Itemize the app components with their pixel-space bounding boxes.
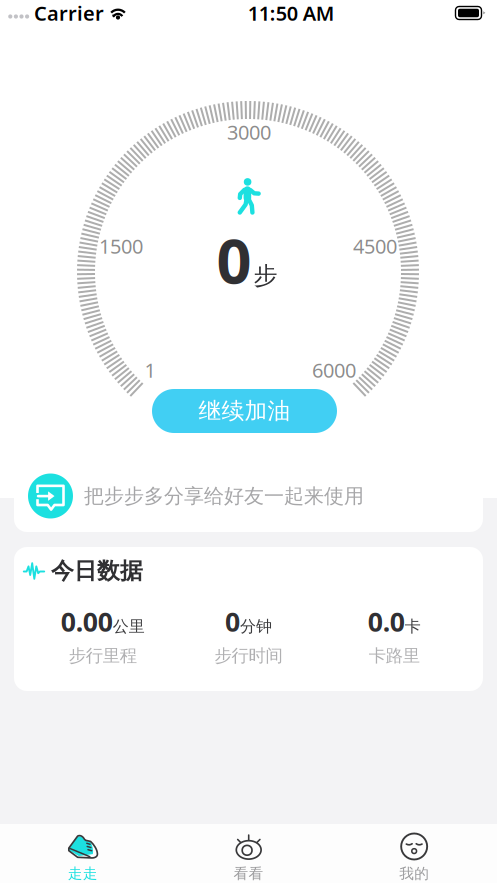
- staticText: 走走: [68, 864, 98, 882]
- staticText: 卡路里: [369, 645, 420, 666]
- staticText: 0: [225, 604, 240, 639]
- staticText: 3000: [227, 119, 271, 145]
- button[interactable]: 继续加油: [152, 389, 337, 433]
- staticText: 继续加油: [198, 397, 290, 425]
- button[interactable]: 看看: [166, 820, 331, 883]
- staticText: 步: [253, 261, 277, 291]
- button[interactable]: 走走: [0, 820, 166, 883]
- staticText: 看看: [233, 864, 263, 882]
- button[interactable]: 我的: [331, 820, 497, 883]
- staticText: Carrier: [34, 0, 104, 26]
- staticText: 6000: [312, 357, 356, 383]
- staticText: 分钟: [240, 616, 272, 636]
- staticText: 0.0: [368, 604, 405, 639]
- staticText: 今日数据: [51, 557, 143, 585]
- staticText: 11:50 AM: [248, 0, 335, 26]
- staticText: 0.00: [61, 604, 113, 639]
- staticText: 1500: [99, 233, 143, 259]
- staticText: 公里: [113, 616, 145, 636]
- staticText: 步行时间: [214, 645, 282, 666]
- staticText: 卡: [405, 616, 421, 636]
- staticText: 步行里程: [69, 645, 137, 666]
- staticText: 0: [216, 219, 251, 301]
- staticText: 1: [144, 357, 155, 383]
- button[interactable]: 把步步多分享给好友一起来使用: [14, 460, 483, 532]
- staticText: 把步步多分享给好友一起来使用: [84, 484, 364, 508]
- staticText: 4500: [353, 233, 397, 259]
- staticText: 我的: [399, 864, 429, 882]
